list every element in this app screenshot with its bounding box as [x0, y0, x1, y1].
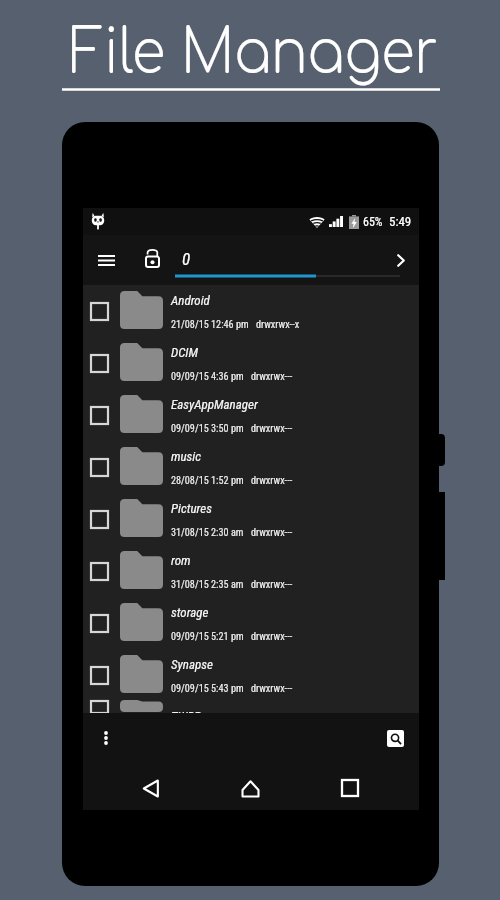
- button[interactable]: Recents: [333, 771, 367, 805]
- button[interactable]: Search: [387, 730, 404, 747]
- staticText: 28/08/15 1:52 pm: [171, 475, 244, 487]
- staticText: drwxrwx---: [251, 475, 293, 487]
- staticText: TWRP: [171, 709, 201, 713]
- staticText: EasyAppManager: [171, 397, 258, 412]
- staticText: drwxrwx---: [251, 631, 293, 643]
- button[interactable]: EasyAppManager: [83, 389, 419, 441]
- staticText: Synapse: [171, 657, 213, 672]
- button[interactable]: TWRP: [83, 701, 419, 713]
- staticText: storage: [171, 605, 209, 620]
- staticText: music: [171, 449, 202, 464]
- staticText: drwxrwx---: [251, 527, 293, 539]
- staticText: Pictures: [171, 501, 212, 516]
- button[interactable]: DCIM: [83, 337, 419, 389]
- staticText: 31/08/15 2:30 am: [171, 527, 244, 539]
- staticText: drwxrwx---: [251, 579, 293, 591]
- staticText: 09/09/15 3:50 pm: [171, 423, 244, 435]
- button[interactable]: Forward: [387, 246, 415, 274]
- staticText: DCIM: [171, 345, 199, 360]
- staticText: Android: [171, 293, 210, 308]
- button[interactable]: Home: [233, 771, 267, 805]
- staticText: 0: [182, 249, 191, 269]
- staticText: drwxrwx---: [251, 423, 293, 435]
- staticText: drwxrwx--x: [256, 319, 300, 331]
- button[interactable]: Menu: [92, 246, 120, 274]
- staticText: 09/09/15 5:43 pm: [171, 683, 244, 695]
- button[interactable]: music: [83, 441, 419, 493]
- button[interactable]: Back: [134, 771, 168, 805]
- button[interactable]: Pictures: [83, 493, 419, 545]
- staticText: 09/09/15 4:36 pm: [171, 371, 244, 383]
- staticText: 21/08/15 12:46 pm: [171, 319, 249, 331]
- button[interactable]: More options: [92, 724, 120, 752]
- button[interactable]: storage: [83, 597, 419, 649]
- staticText: 5:49: [389, 214, 412, 229]
- staticText: drwxrwx---: [251, 371, 293, 383]
- staticText: 31/08/15 2:35 am: [171, 579, 244, 591]
- staticText: 65%: [363, 215, 383, 229]
- button[interactable]: Android: [83, 285, 419, 337]
- button[interactable]: Unlock: [138, 244, 166, 272]
- button[interactable]: Synapse: [83, 649, 419, 701]
- staticText: rom: [171, 553, 191, 568]
- staticText: 09/09/15 5:21 pm: [171, 631, 244, 643]
- staticText: drwxrwx---: [251, 683, 293, 695]
- staticText: File Manager: [35, 18, 473, 87]
- button[interactable]: rom: [83, 545, 419, 597]
